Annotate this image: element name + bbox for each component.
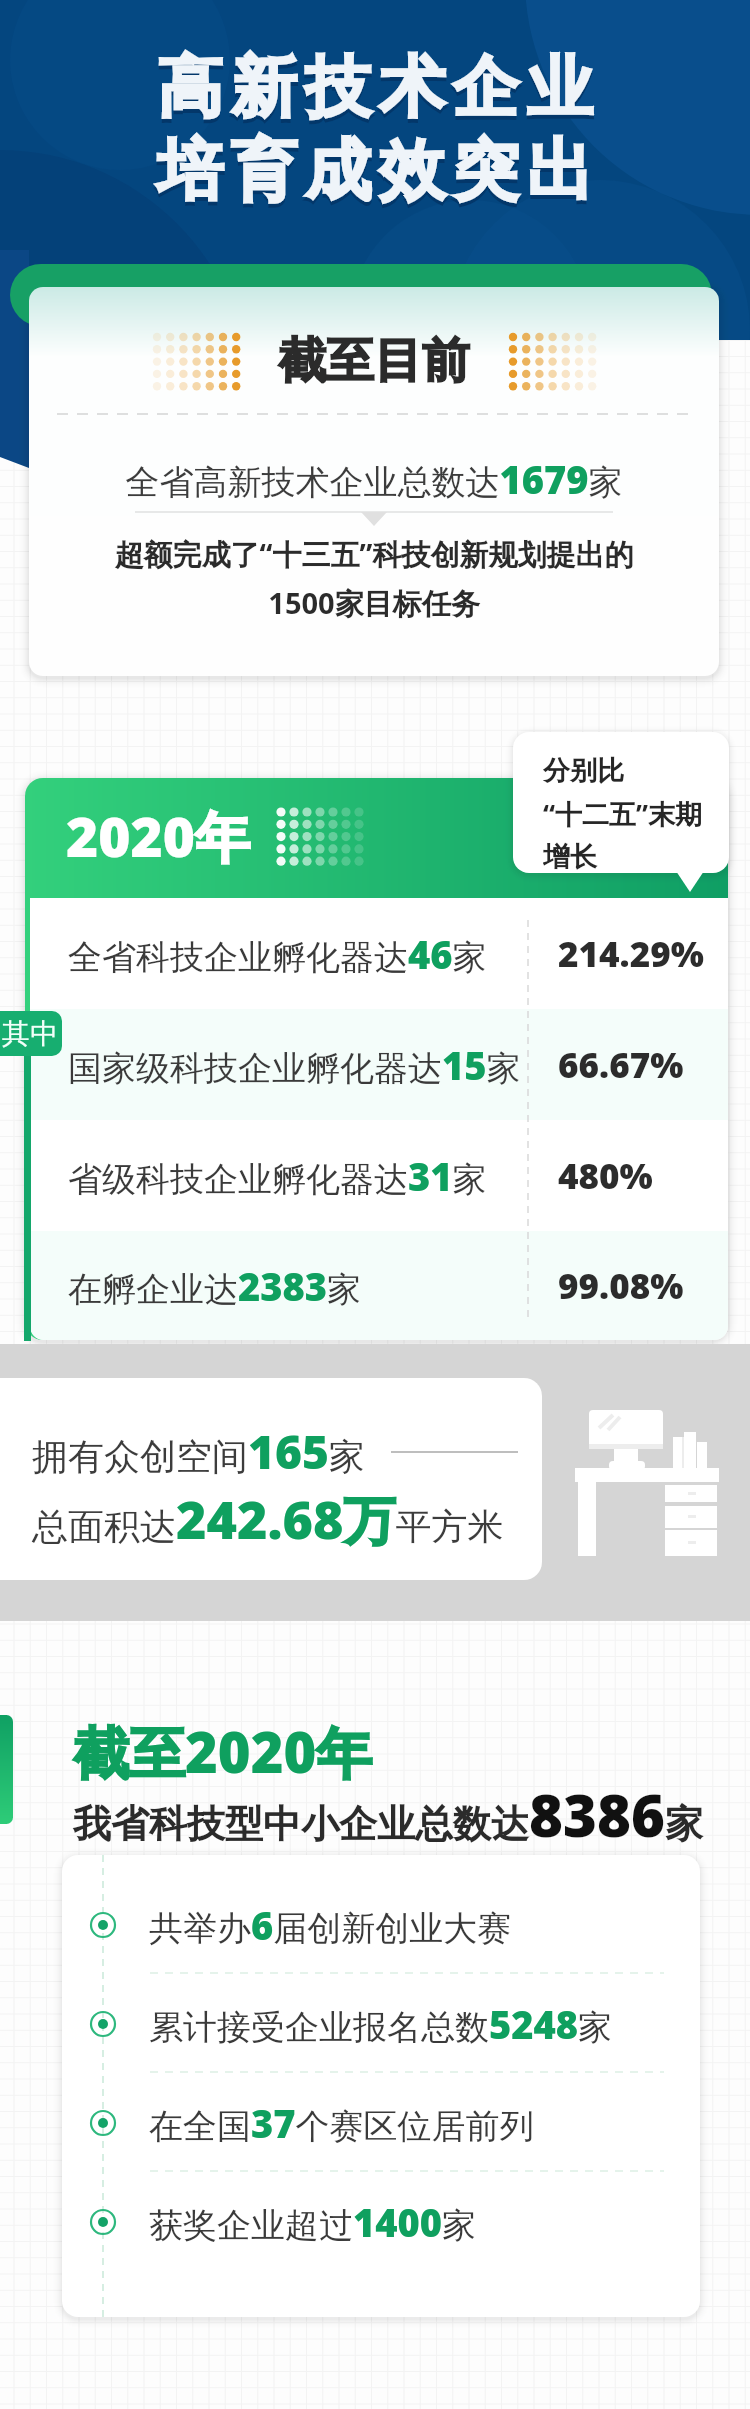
staticText: 总面积达242.68万平方米 [32, 1483, 504, 1554]
staticText: 66.67% [558, 1041, 684, 1089]
staticText: 截至目前 [278, 331, 470, 391]
button[interactable]: 获奖企业超过1400家 [62, 2172, 700, 2271]
staticText: 累计接受企业报名总数5248家 [149, 1998, 613, 2050]
staticText: 全省科技企业孵化器达46家 [68, 928, 487, 980]
button[interactable]: 拥有众创空间165家 [0, 1378, 542, 1580]
button[interactable]: 在全国37个赛区位居前列 [62, 2073, 700, 2172]
staticText: 高新技术企业 [153, 50, 597, 133]
staticText: 超额完成了“十三五”科技创新规划提出的 1500家目标任务 [29, 534, 719, 622]
staticText: 99.08% [558, 1262, 684, 1310]
staticText: 2020年 [66, 798, 250, 873]
staticText: 拥有众创空间165家 [32, 1420, 365, 1483]
button[interactable]: 国家级科技企业孵化器达15家 [30, 1009, 728, 1120]
button[interactable]: 其中 [0, 1011, 62, 1056]
button[interactable]: 共举办6届创新创业大赛 [62, 1875, 700, 1974]
staticText: 省级科技企业孵化器达31家 [68, 1150, 487, 1202]
other: Workspace illustration [575, 1400, 725, 1560]
button[interactable]: 在孵企业达2383家 [30, 1231, 728, 1340]
staticText: 其中 [2, 1016, 58, 1051]
button[interactable]: 省级科技企业孵化器达31家 [30, 1120, 728, 1231]
staticText: 214.29% [558, 930, 704, 978]
staticText: 获奖企业超过1400家 [149, 2196, 477, 2248]
button[interactable]: 截至目前 [29, 287, 719, 676]
staticText: 在全国37个赛区位居前列 [149, 2097, 534, 2149]
staticText: 全省高新技术企业总数达1679家 [29, 453, 719, 505]
button[interactable]: 分别比 “十二五”末期 增长 [513, 732, 729, 873]
staticText: 截至2020年 [73, 1713, 373, 1789]
staticText: 培育成效突出 [153, 133, 597, 216]
staticText: 高新技术企业 [153, 46, 597, 129]
staticText: 培育成效突出 [153, 129, 597, 212]
staticText: 在孵企业达2383家 [68, 1260, 362, 1312]
staticText: 480% [558, 1152, 653, 1200]
staticText: 共举办6届创新创业大赛 [149, 1899, 512, 1951]
staticText: 我省科技型中小企业总数达8386家 [73, 1775, 703, 1854]
button[interactable]: 全省科技企业孵化器达46家 [30, 898, 728, 1009]
staticText: 分别比 “十二五”末期 增长 [543, 754, 703, 873]
staticText: 国家级科技企业孵化器达15家 [68, 1039, 521, 1091]
button[interactable]: 累计接受企业报名总数5248家 [62, 1974, 700, 2073]
